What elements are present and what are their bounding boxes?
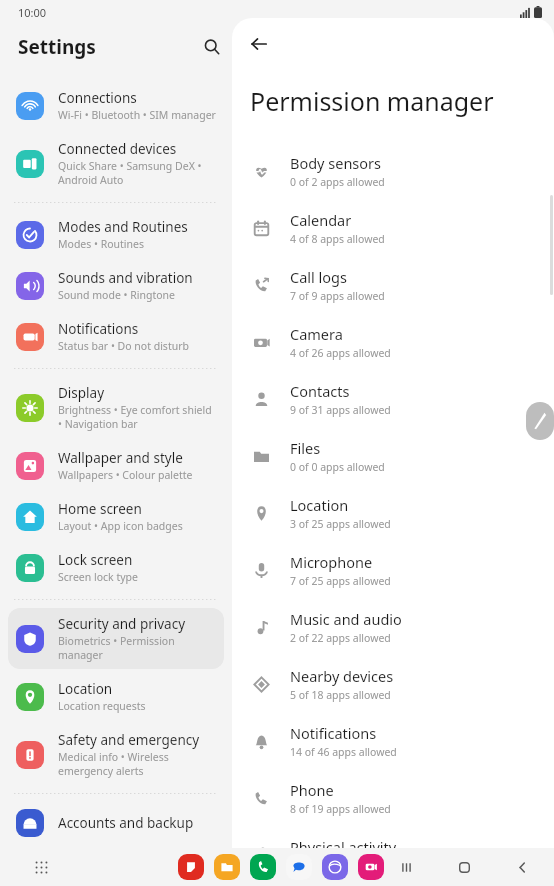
staticText: 4 of 26 apps allowed: [290, 346, 391, 360]
staticText: Modes • Routines: [58, 237, 145, 251]
staticText: Display: [58, 384, 105, 402]
staticText: Settings: [18, 34, 96, 60]
staticText: Medical info • Wireless emergency alerts: [58, 750, 218, 778]
staticText: Body sensors: [290, 153, 382, 173]
button[interactable]: Music and audio: [232, 598, 554, 655]
staticText: Contacts: [290, 381, 350, 401]
staticText: Physical activity: [290, 837, 397, 857]
staticText: Connected devices: [58, 140, 177, 158]
staticText: Screen lock type: [58, 570, 138, 584]
staticText: Layout • App icon badges: [58, 519, 183, 533]
button[interactable]: Phone: [232, 769, 554, 826]
button[interactable]: Sounds and vibration: [8, 262, 224, 309]
staticText: Microphone: [290, 552, 373, 572]
button[interactable]: note: [178, 854, 204, 880]
button[interactable]: Connected devices: [8, 133, 224, 194]
button[interactable]: Physical activity: [232, 826, 554, 883]
staticText: Camera: [290, 324, 343, 344]
staticText: Phone: [290, 780, 334, 800]
staticText: Brightness • Eye comfort shield • Naviga…: [58, 403, 218, 431]
button[interactable]: Files: [232, 427, 554, 484]
staticText: Permission manager: [250, 84, 494, 118]
staticText: 0 of 0 apps allowed: [290, 460, 385, 474]
staticText: Sound mode • Ringtone: [58, 288, 175, 302]
staticText: Notifications: [290, 723, 377, 743]
staticText: Location: [290, 495, 349, 515]
staticText: 3 of 25 apps allowed: [290, 517, 391, 531]
button[interactable]: Location: [8, 673, 224, 720]
button[interactable]: Contacts: [232, 370, 554, 427]
staticText: Music and audio: [290, 609, 402, 629]
button[interactable]: Calendar: [232, 199, 554, 256]
staticText: 10:00: [18, 5, 47, 20]
staticText: Location requests: [58, 699, 146, 713]
button[interactable]: Nearby devices: [232, 655, 554, 712]
button[interactable]: Notifications: [232, 712, 554, 769]
staticText: Safety and emergency: [58, 731, 200, 749]
staticText: Sounds and vibration: [58, 269, 193, 287]
button[interactable]: Body sensors: [232, 142, 554, 199]
button[interactable]: Back: [242, 26, 276, 62]
staticText: Files: [290, 438, 321, 458]
button[interactable]: Home screen: [8, 493, 224, 540]
button[interactable]: browser: [322, 854, 348, 880]
button[interactable]: Display: [8, 377, 224, 438]
staticText: 14 of 46 apps allowed: [290, 745, 397, 759]
button[interactable]: Search: [192, 27, 232, 67]
button[interactable]: Lock screen: [8, 544, 224, 591]
staticText: Wi-Fi • Bluetooth • SIM manager: [58, 108, 216, 122]
staticText: Connections: [58, 89, 137, 107]
staticText: Home screen: [58, 500, 142, 518]
staticText: Wallpaper and style: [58, 449, 183, 467]
staticText: Status bar • Do not disturb: [58, 339, 189, 353]
staticText: 2 of 6 apps allowed: [290, 859, 385, 873]
button[interactable]: Wallpaper and style: [8, 442, 224, 489]
button[interactable]: Apps: [28, 854, 54, 880]
button[interactable]: msg: [286, 854, 312, 880]
button[interactable]: Connections: [8, 82, 224, 129]
staticText: Wallpapers • Colour palette: [58, 468, 193, 482]
staticText: 8 of 19 apps allowed: [290, 802, 391, 816]
button[interactable]: Camera: [232, 313, 554, 370]
staticText: 0 of 2 apps allowed: [290, 175, 385, 189]
staticText: 7 of 9 apps allowed: [290, 289, 385, 303]
staticText: 7 of 25 apps allowed: [290, 574, 391, 588]
staticText: Location: [58, 680, 113, 698]
staticText: Lock screen: [58, 551, 133, 569]
button[interactable]: phone: [250, 854, 276, 880]
button[interactable]: files: [214, 854, 240, 880]
button[interactable]: Notifications: [8, 313, 224, 360]
staticText: Notifications: [58, 320, 139, 338]
button[interactable]: Accounts and backup: [8, 802, 224, 844]
button[interactable]: Edit: [526, 402, 554, 440]
staticText: Nearby devices: [290, 666, 394, 686]
button[interactable]: Call logs: [232, 256, 554, 313]
button[interactable]: back: [508, 853, 536, 881]
button[interactable]: home: [450, 853, 478, 881]
staticText: Security and privacy: [58, 615, 186, 633]
staticText: 9 of 31 apps allowed: [290, 403, 391, 417]
button[interactable]: Safety and emergency: [8, 724, 224, 785]
button[interactable]: Modes and Routines: [8, 211, 224, 258]
staticText: Modes and Routines: [58, 218, 188, 236]
staticText: Calendar: [290, 210, 352, 230]
staticText: Quick Share • Samsung DeX • Android Auto: [58, 159, 218, 187]
staticText: 5 of 18 apps allowed: [290, 688, 391, 702]
staticText: Accounts and backup: [58, 814, 194, 832]
staticText: 2 of 22 apps allowed: [290, 631, 391, 645]
button[interactable]: Location: [232, 484, 554, 541]
staticText: 4 of 8 apps allowed: [290, 232, 385, 246]
button[interactable]: recents: [392, 853, 420, 881]
button[interactable]: cam: [358, 854, 384, 880]
button[interactable]: Security and privacy: [8, 608, 224, 669]
button[interactable]: Microphone: [232, 541, 554, 598]
staticText: Call logs: [290, 267, 347, 287]
staticText: Biometrics • Permission manager: [58, 634, 218, 662]
